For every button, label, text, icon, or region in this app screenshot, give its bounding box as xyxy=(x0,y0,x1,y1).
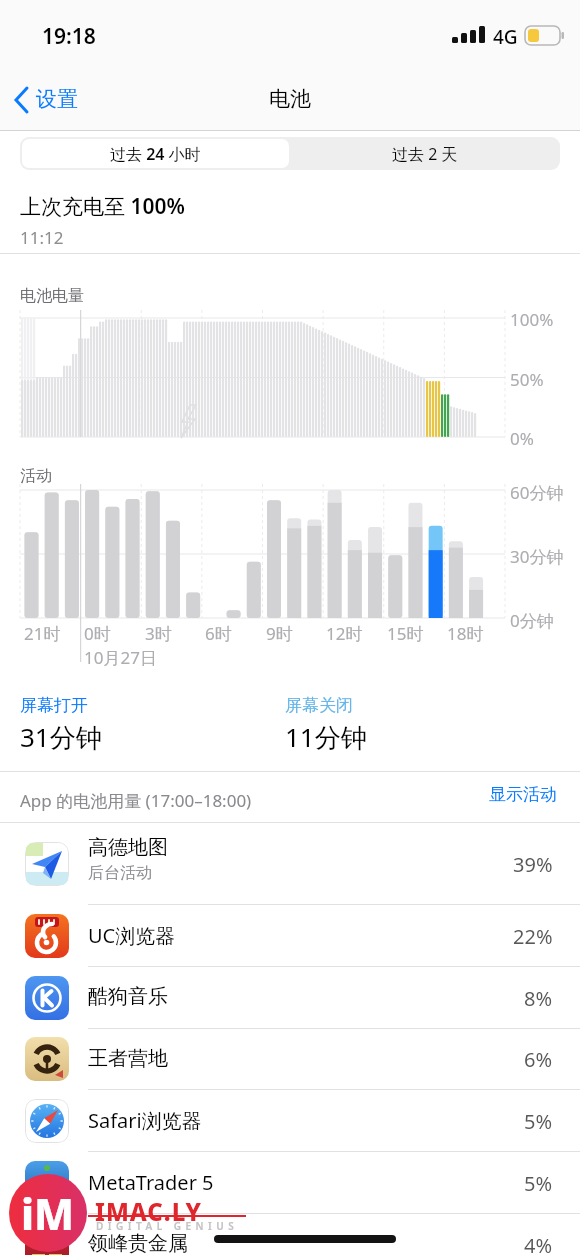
staticText: 6时 xyxy=(205,622,232,645)
staticText: 电池电量 xyxy=(20,286,84,306)
staticText: App 的电池用量 (17:00–18:00) xyxy=(20,789,252,812)
staticText: 11:12 xyxy=(20,226,64,249)
staticText: 电池 xyxy=(269,86,311,112)
staticText: 5% xyxy=(524,1108,553,1135)
staticText: 5% xyxy=(524,1170,553,1197)
staticText: MetaTrader 5 xyxy=(88,1169,214,1196)
staticText: 3时 xyxy=(145,622,172,645)
staticText: IMAC.LY xyxy=(95,1195,203,1228)
button[interactable]: UC浏览器 xyxy=(0,905,580,967)
staticText: 过去 24 小时 xyxy=(110,143,201,165)
staticText: 高德地图 xyxy=(88,835,168,860)
staticText: UC浏览器 xyxy=(88,922,176,949)
staticText: 0分钟 xyxy=(510,609,554,632)
staticText: 10月27日 xyxy=(84,646,157,669)
staticText: 21时 xyxy=(24,622,61,645)
staticText: 4G xyxy=(493,24,518,50)
staticText: 8% xyxy=(524,985,553,1012)
staticText: 6% xyxy=(524,1046,553,1073)
staticText: 60分钟 xyxy=(510,481,564,504)
button[interactable]: 过去 24 小时 xyxy=(22,139,289,168)
staticText: 屏幕关闭 xyxy=(285,695,353,716)
button[interactable]: 过去 2 天 xyxy=(291,139,558,168)
staticText: 活动 xyxy=(20,466,52,486)
staticText: 屏幕打开 xyxy=(20,695,88,716)
staticText: 上次充电至 100% xyxy=(20,192,185,221)
button[interactable]: 领峰贵金属 xyxy=(0,1214,580,1255)
button[interactable]: 酷狗音乐 xyxy=(0,967,580,1029)
staticText: DIGITAL GENIUS xyxy=(96,1219,239,1233)
staticText: 设置 xyxy=(36,86,78,112)
staticText: Safari浏览器 xyxy=(88,1107,202,1134)
staticText: 显示活动 xyxy=(489,784,557,805)
staticText: 0% xyxy=(510,427,534,450)
staticText: 18时 xyxy=(447,622,484,645)
staticText: 15时 xyxy=(387,622,424,645)
button[interactable]: MetaTrader 5 xyxy=(0,1152,580,1214)
staticText: 100% xyxy=(510,308,554,331)
staticText: 0时 xyxy=(84,622,111,645)
staticText: 过去 2 天 xyxy=(392,143,458,165)
staticText: 酷狗音乐 xyxy=(88,984,168,1009)
button[interactable]: 设置 xyxy=(8,82,98,120)
staticText: 9时 xyxy=(266,622,293,645)
button[interactable]: Safari浏览器 xyxy=(0,1090,580,1152)
staticText: iM xyxy=(21,1185,75,1242)
button[interactable]: 显示活动 xyxy=(380,784,557,814)
staticText: 12时 xyxy=(326,622,363,645)
staticText: 11分钟 xyxy=(285,719,367,755)
staticText: 50% xyxy=(510,368,544,391)
staticText: 39% xyxy=(513,851,553,878)
staticText: 领峰贵金属 xyxy=(88,1231,188,1255)
staticText: 30分钟 xyxy=(510,545,564,568)
staticText: 4% xyxy=(524,1232,553,1255)
button[interactable]: 高德地图 xyxy=(0,823,580,905)
staticText: 后台活动 xyxy=(88,863,152,883)
staticText: 王者营地 xyxy=(88,1046,168,1071)
button[interactable]: 王者营地 xyxy=(0,1029,580,1090)
staticText: 22% xyxy=(513,923,553,950)
staticText: 31分钟 xyxy=(20,719,102,755)
staticText: 19:18 xyxy=(42,22,96,51)
